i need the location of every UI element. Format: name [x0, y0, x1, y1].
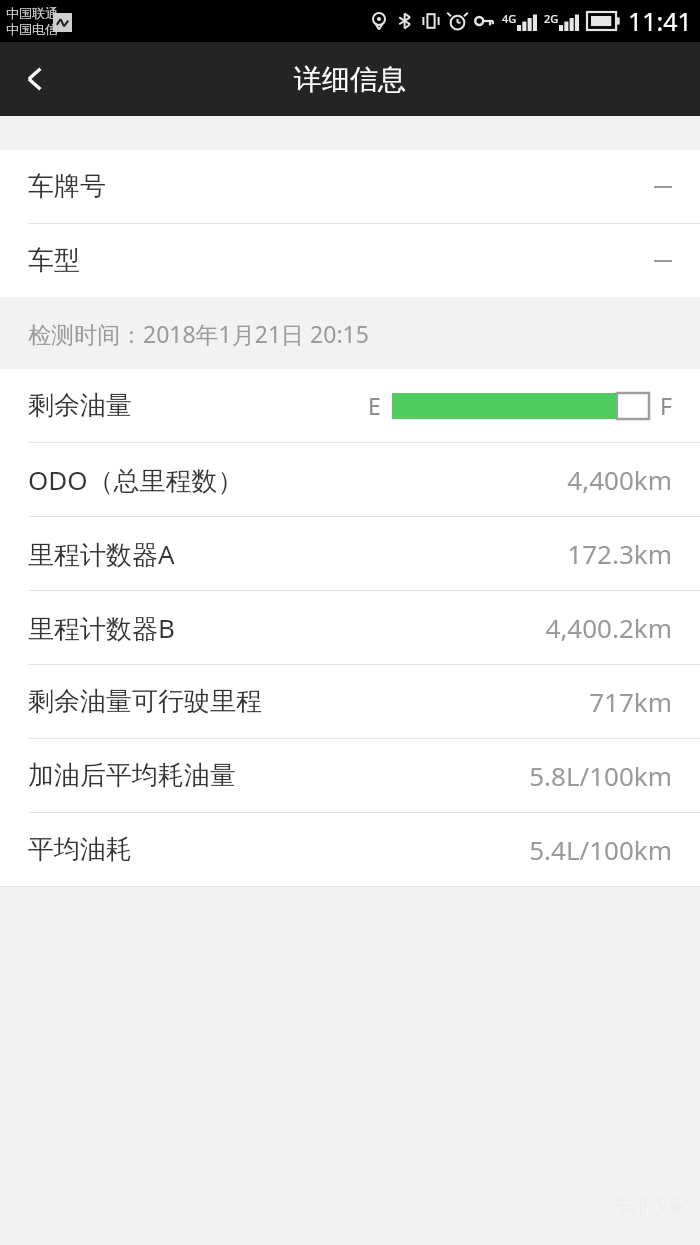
staticText: 4,400km: [567, 462, 672, 497]
button[interactable]: ODO（总里程数）: [0, 443, 700, 516]
staticText: 717km: [589, 684, 672, 719]
staticText: 中国电信: [6, 21, 58, 37]
button[interactable]: Back: [0, 42, 74, 116]
staticText: 平均油耗: [28, 833, 132, 866]
staticText: 中国联通: [6, 5, 58, 21]
staticText: 检测时间：2018年1月21日 20:15: [28, 318, 369, 349]
staticText: 172.3km: [567, 536, 672, 571]
staticText: 4G: [502, 11, 517, 26]
staticText: 5.4L/100km: [529, 832, 672, 867]
staticText: 剩余油量: [28, 389, 132, 422]
staticText: 里程计数器B: [28, 610, 175, 646]
button[interactable]: 加油后平均耗油量: [0, 739, 700, 812]
staticText: 详细信息: [294, 62, 406, 97]
button[interactable]: 剩余油量可行驶里程: [0, 665, 700, 738]
staticText: 2G: [544, 11, 559, 26]
button[interactable]: 车型: [0, 224, 700, 297]
staticText: F: [660, 390, 672, 421]
button[interactable]: 剩余油量: [0, 369, 700, 442]
staticText: 5.8L/100km: [529, 758, 672, 793]
staticText: 里程计数器A: [28, 536, 175, 572]
staticText: 车牌号: [28, 170, 106, 203]
staticText: 11:41: [628, 4, 692, 38]
staticText: E: [368, 390, 381, 421]
staticText: 车型: [28, 244, 80, 277]
button[interactable]: 里程计数器A: [0, 517, 700, 590]
button[interactable]: 车牌号: [0, 150, 700, 223]
staticText: 剩余油量可行驶里程: [28, 685, 262, 718]
button[interactable]: 里程计数器B: [0, 591, 700, 664]
staticText: 加油后平均耗油量: [28, 759, 236, 792]
staticText: ODO（总里程数）: [28, 462, 244, 498]
button[interactable]: 平均油耗: [0, 813, 700, 886]
staticText: 4,400.2km: [545, 610, 672, 645]
